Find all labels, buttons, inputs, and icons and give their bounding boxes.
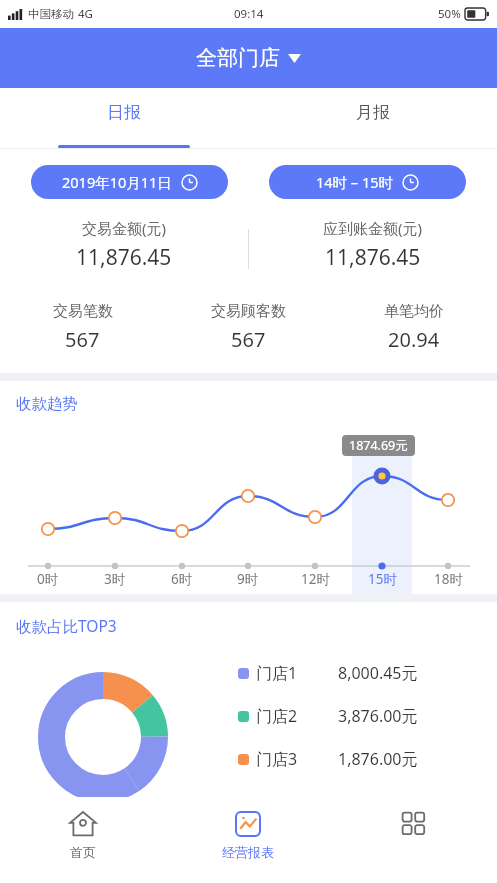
button[interactable]: 14时 – 15时 xyxy=(269,165,466,199)
staticText: 1874.69元 xyxy=(349,437,408,454)
staticText: 567 xyxy=(65,326,100,353)
staticText: 日报 xyxy=(107,102,141,123)
staticText: 567 xyxy=(231,326,266,353)
staticText: 交易金额(元) xyxy=(82,218,167,238)
staticText: 收款趋势 xyxy=(16,394,78,414)
staticText: 4G xyxy=(78,6,93,22)
staticText: 经营报表 xyxy=(222,844,274,860)
button[interactable]: 经营报表 xyxy=(165,797,331,883)
staticText: 11,876.45 xyxy=(325,243,421,272)
staticText: 应到账金额(元) xyxy=(323,218,423,238)
staticText: 11,876.45 xyxy=(76,243,172,272)
staticText: 全部门店 xyxy=(196,45,280,71)
button[interactable]: 全部门店 xyxy=(0,28,497,88)
staticText: 首页 xyxy=(70,844,96,860)
staticText: 50% xyxy=(438,6,461,22)
staticText: 3时 xyxy=(104,570,126,588)
staticText: 20.94 xyxy=(388,326,440,353)
staticText: 门店1 xyxy=(256,662,298,684)
staticText: 门店3 xyxy=(256,748,298,770)
staticText: 0时 xyxy=(37,570,59,588)
staticText: 14时 – 15时 xyxy=(316,172,393,192)
button[interactable]: More xyxy=(331,797,497,883)
staticText: 15时 xyxy=(368,570,397,588)
button[interactable]: 2019年10月11日 xyxy=(31,165,228,199)
staticText: 中国移动 xyxy=(28,7,74,21)
staticText: 6时 xyxy=(171,570,193,588)
staticText: 9时 xyxy=(237,570,259,588)
staticText: 交易顾客数 xyxy=(211,302,286,321)
staticText: 2019年10月11日 xyxy=(62,172,172,192)
staticText: 单笔均价 xyxy=(384,302,444,321)
staticText: 18时 xyxy=(434,570,463,588)
staticText: 收款占比TOP3 xyxy=(16,615,117,636)
staticText: 1,876.00元 xyxy=(338,748,418,770)
staticText: 8,000.45元 xyxy=(338,662,418,684)
staticText: 门店2 xyxy=(256,705,298,727)
staticText: 3,876.00元 xyxy=(338,705,418,727)
staticText: 09:14 xyxy=(234,6,264,22)
button[interactable]: 日报 xyxy=(0,88,248,148)
staticText: 月报 xyxy=(356,102,390,123)
button[interactable]: 首页 xyxy=(0,797,165,883)
button[interactable]: 月报 xyxy=(248,88,497,148)
staticText: 12时 xyxy=(301,570,330,588)
staticText: 交易笔数 xyxy=(53,302,113,321)
